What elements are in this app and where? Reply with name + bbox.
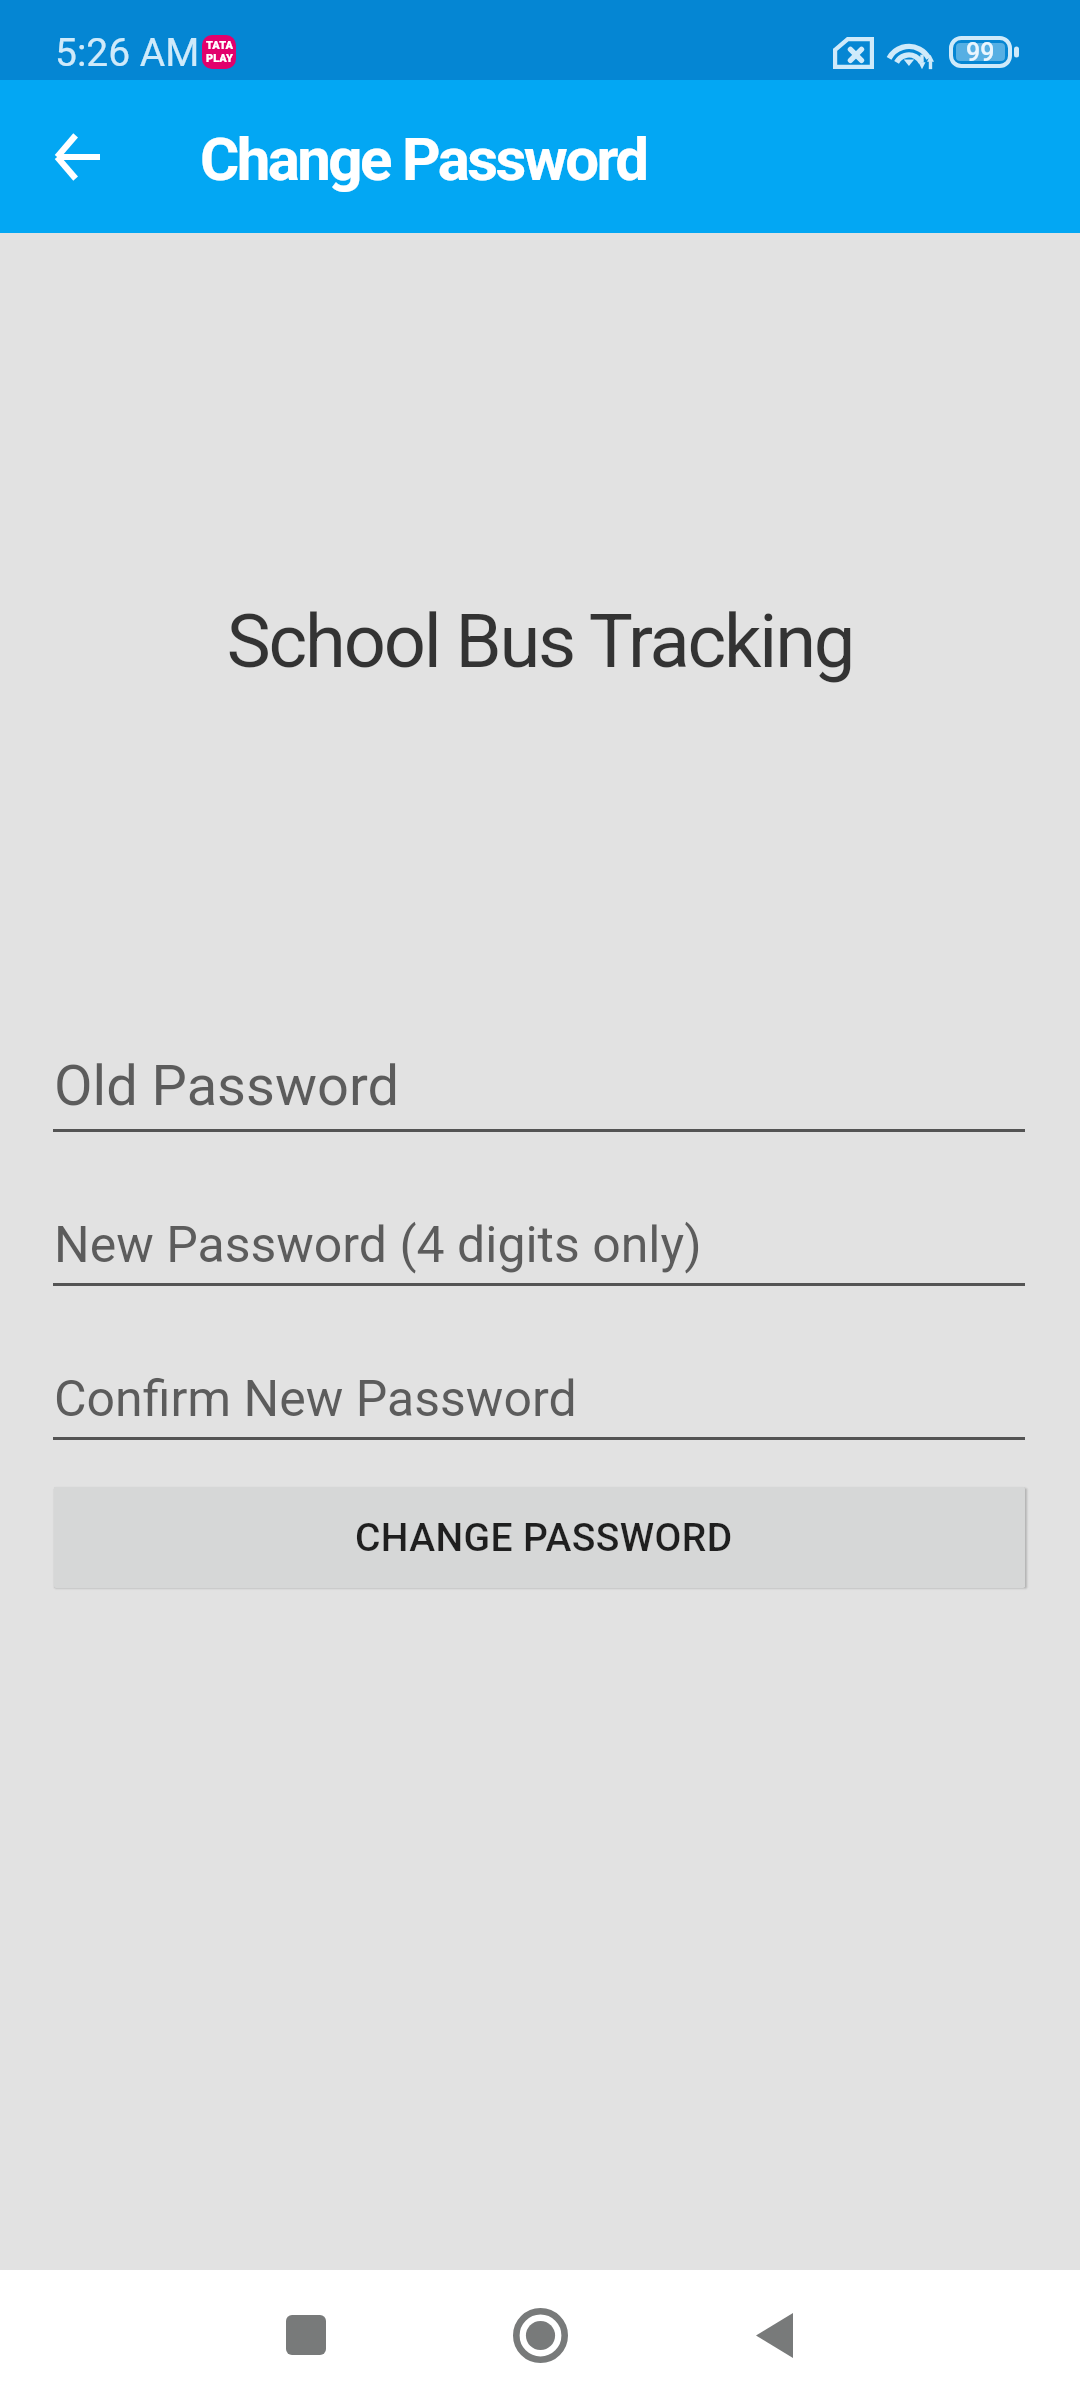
staticText: Change Password: [200, 124, 647, 194]
staticText: Old Password: [54, 1053, 399, 1119]
button[interactable]: CHANGE PASSWORD: [54, 1487, 1025, 1588]
staticText: School Bus Tracking: [0, 598, 1080, 685]
staticText: 99: [966, 38, 995, 67]
staticText: Confirm New Password: [54, 1370, 577, 1429]
button[interactable]: Home: [423, 2270, 657, 2400]
button[interactable]: Confirm New Password: [53, 1353, 1025, 1440]
button[interactable]: Navigate up: [12, 80, 142, 233]
button[interactable]: Back: [657, 2270, 891, 2400]
staticText: TATA: [206, 39, 233, 52]
staticText: 5:26 AM: [55, 30, 200, 76]
staticText: CHANGE PASSWORD: [355, 1515, 733, 1561]
staticText: New Password (4 digits only): [54, 1216, 702, 1275]
button[interactable]: New Password (4 digits only): [53, 1199, 1025, 1286]
staticText: PLAY: [206, 52, 233, 65]
button[interactable]: Recent apps: [189, 2270, 423, 2400]
button[interactable]: Old Password: [53, 1036, 1025, 1132]
